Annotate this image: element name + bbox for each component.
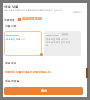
staticText: 2024010212345 [22, 17, 42, 21]
staticText: 주문하신 상품의 배송이 완료되었습니다 [5, 70, 52, 74]
staticText: 배송중 [62, 33, 68, 36]
staticText: 배송 정보 [5, 61, 17, 65]
staticText: 확인 [41, 89, 47, 93]
staticText: 등 [46, 44, 49, 47]
staticText: 배송완료 상품 1건 [6, 38, 25, 41]
staticText: 상품 선택 [5, 24, 17, 28]
other: Selected [40, 53, 43, 56]
staticText: 2024.01.02 [6, 33, 19, 36]
staticText: 2023.12.28 [46, 33, 59, 36]
button[interactable]: 2023.12.28 [44, 31, 81, 56]
staticText: 배송 상품을 선택하시면 상품별 배송정보를 확인하실 수 있습니다 [4, 9, 62, 12]
staticText: 배송 완료일 [5, 79, 20, 83]
staticText: 주문번호 [4, 18, 15, 21]
button[interactable]: 확인 [4, 87, 83, 95]
button[interactable]: 2024.01.02 [4, 31, 42, 56]
staticText: 배송완료 상품 2건 외 [46, 38, 68, 41]
staticText: 배송 상품 [4, 4, 19, 9]
staticText: 주문 금액 정보 표시 영역 [46, 41, 71, 44]
staticText: 상세보기 [73, 11, 82, 14]
